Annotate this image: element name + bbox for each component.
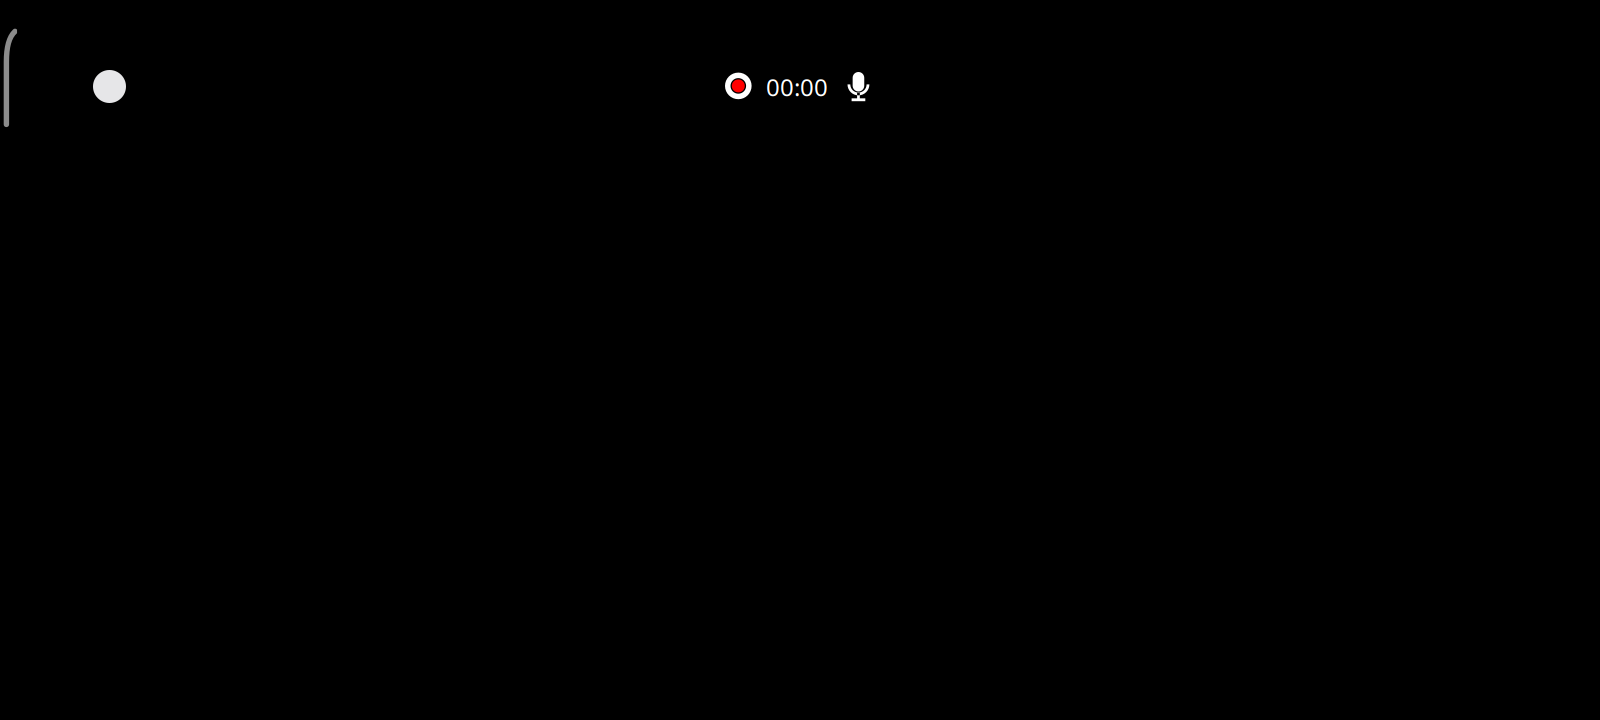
button[interactable]: Microphone — [847, 72, 869, 101]
button[interactable]: Stop recording — [725, 73, 752, 99]
staticText: 00:00 — [766, 71, 828, 103]
button[interactable]: Capture — [93, 70, 126, 103]
